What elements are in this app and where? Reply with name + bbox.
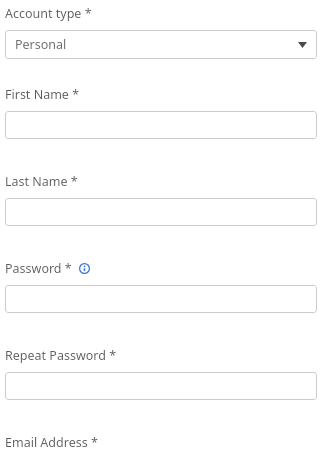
button[interactable]: Account type: Personal bbox=[5, 30, 317, 59]
button[interactable]: Repeat Password bbox=[5, 372, 317, 400]
button[interactable]: Last Name bbox=[5, 198, 317, 226]
button[interactable]: First Name bbox=[5, 111, 317, 139]
staticText: Account type * bbox=[5, 5, 92, 22]
staticText: Repeat Password * bbox=[5, 347, 117, 364]
button[interactable]: Password bbox=[5, 285, 317, 313]
staticText: First Name * bbox=[5, 86, 80, 103]
staticText: Email Address * bbox=[5, 434, 98, 451]
staticText: Personal bbox=[15, 36, 298, 53]
staticText: Last Name * bbox=[5, 173, 78, 190]
staticText: Password * bbox=[5, 260, 72, 277]
button[interactable]: Password information bbox=[79, 263, 90, 274]
